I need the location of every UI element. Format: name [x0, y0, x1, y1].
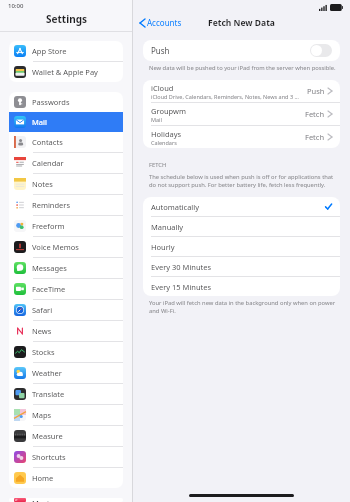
staticText: Voice Memos [32, 242, 79, 252]
button[interactable]: Contacts [9, 132, 123, 152]
button[interactable]: Measure [9, 426, 123, 446]
button[interactable]: Stocks [9, 342, 123, 362]
staticText: Fetch [305, 132, 325, 142]
button[interactable]: Hourly [143, 237, 340, 256]
button[interactable]: Weather [9, 363, 123, 383]
staticText: Messages [32, 263, 67, 273]
button[interactable]: Reminders [9, 195, 123, 215]
staticText: Passwords [32, 97, 70, 107]
button[interactable]: Mail [9, 112, 123, 132]
button[interactable]: FaceTime [9, 279, 123, 299]
button[interactable]: Wallet & Apple Pay [9, 62, 123, 82]
button[interactable]: Messages [9, 258, 123, 278]
staticText: New data will be pushed to your iPad fro… [149, 64, 336, 72]
staticText: Shortcuts [32, 452, 66, 462]
staticText: Music [32, 498, 53, 502]
staticText: Calendars [151, 139, 177, 146]
button[interactable]: Voice Memos [9, 237, 123, 257]
staticText: Settings [46, 12, 87, 26]
staticText: iCloud [151, 83, 174, 93]
button[interactable]: Automatically [143, 197, 340, 216]
button[interactable]: Shortcuts [9, 447, 123, 467]
staticText: Reminders [32, 200, 71, 210]
staticText: App Store [32, 46, 67, 56]
staticText: Your iPad will fetch new data in the bac… [149, 299, 336, 315]
staticText: Freeform [32, 221, 65, 231]
staticText: iCloud Drive, Calendars, Reminders, Note… [151, 93, 303, 100]
staticText: Wallet & Apple Pay [32, 67, 98, 77]
staticText: Every 30 Minutes [151, 262, 212, 272]
staticText: Push [151, 45, 170, 56]
button[interactable]: App Store [9, 41, 123, 61]
button[interactable]: iCloud [143, 80, 340, 102]
staticText: Stocks [32, 347, 55, 357]
button[interactable]: Holidays [143, 126, 340, 148]
staticText: Push [307, 86, 325, 96]
staticText: Groupwm [151, 106, 186, 116]
button[interactable]: Groupwm [143, 103, 340, 125]
button[interactable]: News [9, 321, 123, 341]
button[interactable]: Push toggle, off [310, 44, 332, 57]
staticText: Safari [32, 305, 53, 315]
staticText: Holidays [151, 129, 182, 139]
button[interactable]: Manually [143, 217, 340, 236]
button[interactable]: Passwords [9, 92, 123, 112]
button[interactable]: Maps [9, 405, 123, 425]
staticText: Manually [151, 222, 184, 232]
staticText: Contacts [32, 137, 63, 147]
staticText: Measure [32, 431, 63, 441]
staticText: Fetch New Data [208, 17, 275, 29]
staticText: The schedule below is used when push is … [149, 173, 336, 189]
button[interactable]: Every 15 Minutes [143, 277, 340, 296]
staticText: Maps [32, 410, 52, 420]
staticText: Home [32, 473, 54, 483]
button[interactable]: Accounts [133, 17, 182, 28]
staticText: News [32, 326, 52, 336]
staticText: Mail [32, 117, 47, 127]
staticText: Automatically [151, 202, 200, 212]
staticText: Translate [32, 389, 65, 399]
staticText: Notes [32, 179, 53, 189]
staticText: Hourly [151, 242, 175, 252]
staticText: 10:00 [8, 2, 24, 10]
staticText: FETCH [149, 161, 167, 169]
button[interactable]: Home [9, 468, 123, 488]
staticText: Weather [32, 368, 62, 378]
staticText: Mail [151, 116, 162, 123]
staticText: Fetch [305, 109, 325, 119]
button[interactable]: Translate [9, 384, 123, 404]
staticText: FaceTime [32, 284, 66, 294]
button[interactable]: Notes [9, 174, 123, 194]
staticText: Every 15 Minutes [151, 282, 212, 292]
staticText: Accounts [147, 17, 182, 28]
button[interactable]: Freeform [9, 216, 123, 236]
button[interactable]: Push [143, 40, 340, 61]
staticText: Calendar [32, 158, 64, 168]
button[interactable]: Every 30 Minutes [143, 257, 340, 276]
button[interactable]: Calendar [9, 153, 123, 173]
button[interactable]: Safari [9, 300, 123, 320]
button[interactable]: Music [9, 498, 123, 502]
